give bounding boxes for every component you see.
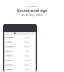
staticText: as of any date (0, 13, 64, 17)
staticText: Gestational age (0, 8, 64, 13)
staticText: Calculator (0, 4, 64, 7)
button[interactable] (0, 0, 64, 72)
